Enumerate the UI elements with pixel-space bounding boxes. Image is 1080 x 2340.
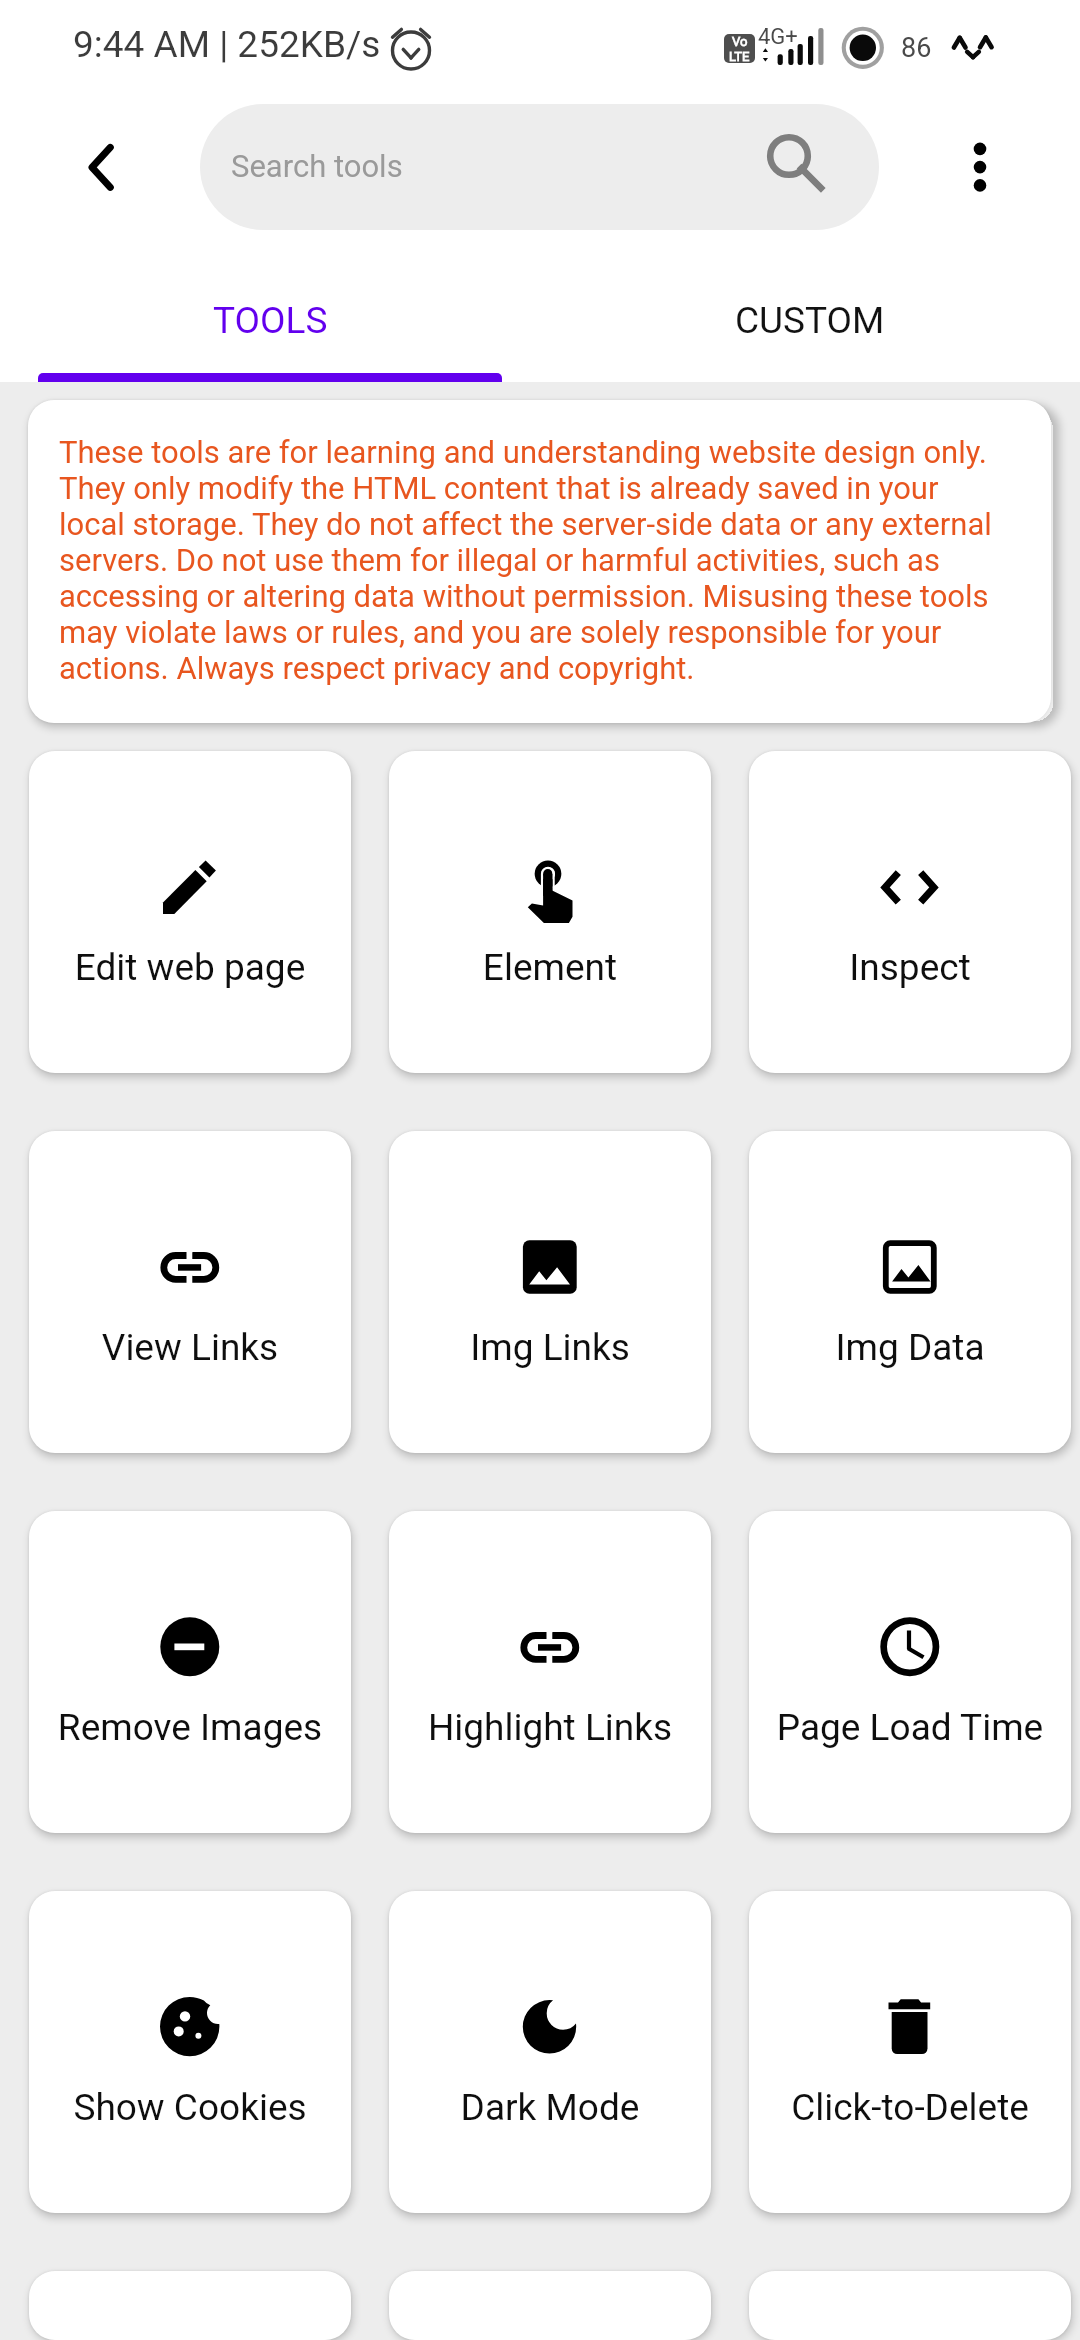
staticText: Page Load Time [749, 1706, 1071, 1749]
staticText: CUSTOM [735, 299, 885, 342]
button[interactable]: Search tools [200, 104, 879, 230]
staticText: Edit web page [29, 946, 351, 989]
staticText: 86 [901, 32, 932, 64]
staticText: Img Links [389, 1326, 711, 1369]
button[interactable]: Highlight Links [389, 1511, 711, 1833]
staticText: LTE [729, 49, 750, 63]
button[interactable]: Click-to-Delete [749, 1891, 1071, 2213]
button[interactable]: Img Links [389, 1131, 711, 1453]
button[interactable]: Dark Mode [389, 1891, 711, 2213]
staticText: Highlight Links [389, 1706, 711, 1749]
staticText: View Links [29, 1326, 351, 1369]
staticText: Vo [732, 34, 748, 49]
staticText: TOOLS [213, 299, 328, 342]
button[interactable]: Element [389, 751, 711, 1073]
staticText: These tools are for learning and underst… [59, 434, 999, 686]
staticText: 9:44 AM | 252KB/s [73, 23, 381, 66]
button[interactable]: View Links [29, 1131, 351, 1453]
button[interactable]: Inspect [749, 751, 1071, 1073]
staticText: Inspect [749, 946, 1071, 989]
button[interactable]: Img Data [749, 1131, 1071, 1453]
staticText: Show Cookies [29, 2086, 351, 2129]
button[interactable]: Remove Images [29, 1511, 351, 1833]
button[interactable] [29, 2271, 351, 2340]
staticText: Click-to-Delete [749, 2086, 1071, 2129]
button[interactable]: More options [940, 108, 1020, 188]
staticText: Img Data [749, 1326, 1071, 1369]
staticText: Element [389, 946, 711, 989]
button[interactable] [389, 2271, 711, 2340]
button[interactable] [749, 2271, 1071, 2340]
staticText: Dark Mode [389, 2086, 711, 2129]
button[interactable]: Edit web page [29, 751, 351, 1073]
button[interactable]: TOOLS [0, 266, 540, 382]
staticText: Search tools [231, 148, 403, 184]
button[interactable]: Back [60, 127, 140, 207]
button[interactable]: Show Cookies [29, 1891, 351, 2213]
staticText: 4G+ [758, 24, 798, 50]
button[interactable]: CUSTOM [540, 266, 1080, 382]
button[interactable]: Page Load Time [749, 1511, 1071, 1833]
staticText: Remove Images [29, 1706, 351, 1749]
